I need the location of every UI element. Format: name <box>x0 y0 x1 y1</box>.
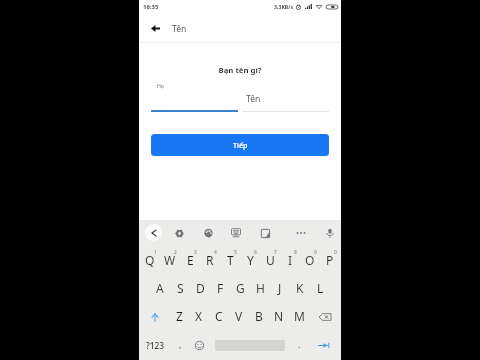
staticText: F <box>217 280 224 296</box>
staticText: B <box>255 308 263 324</box>
button[interactable]: G <box>230 275 250 303</box>
button[interactable]: T <box>220 247 240 275</box>
button[interactable]: K <box>290 275 310 303</box>
staticText: 6 <box>254 249 257 256</box>
staticText: C <box>215 308 223 324</box>
staticText: . <box>298 338 301 350</box>
staticText: T <box>227 252 234 268</box>
button[interactable]: Back <box>145 19 165 39</box>
button[interactable]: A <box>150 275 170 303</box>
button[interactable]: B <box>249 303 269 331</box>
button[interactable]: Themes <box>200 225 216 241</box>
staticText: Tên <box>246 93 261 105</box>
button[interactable]: H <box>250 275 270 303</box>
staticText: J <box>278 280 282 296</box>
staticText: 3 <box>194 249 197 256</box>
staticText: 16:35 <box>143 3 159 11</box>
button[interactable]: Space <box>209 331 291 359</box>
button[interactable]: E <box>180 247 200 275</box>
button[interactable]: N <box>269 303 289 331</box>
staticText: 7 <box>274 249 277 256</box>
staticText: 4 <box>214 249 217 256</box>
button[interactable]: M <box>289 303 309 331</box>
staticText: S <box>177 280 184 296</box>
button[interactable]: Settings <box>171 225 187 241</box>
button[interactable]: Clipboard <box>257 225 273 241</box>
staticText: Tên <box>172 23 187 35</box>
staticText: Tiếp <box>233 140 248 150</box>
button[interactable]: . <box>291 331 308 359</box>
button[interactable]: Backspace <box>309 303 340 331</box>
staticText: K <box>296 280 304 296</box>
button[interactable]: Voice input <box>322 225 338 241</box>
staticText: G <box>236 280 245 296</box>
button[interactable]: , <box>170 331 190 359</box>
button[interactable]: I <box>280 247 300 275</box>
staticText: I <box>288 252 293 268</box>
button[interactable]: F <box>210 275 230 303</box>
button[interactable]: C <box>209 303 229 331</box>
staticText: 1 <box>154 249 157 256</box>
staticText: 2 <box>174 249 177 256</box>
staticText: 8 <box>294 249 297 256</box>
staticText: R <box>206 252 214 268</box>
staticText: D <box>196 280 205 296</box>
button[interactable]: Shift <box>140 303 169 331</box>
staticText: 3,3KB/s <box>274 3 294 10</box>
staticText: U <box>266 252 275 268</box>
staticText: N <box>274 308 284 324</box>
button[interactable]: Tiếp <box>151 134 329 156</box>
button[interactable]: X <box>189 303 209 331</box>
staticText: Y <box>247 252 254 268</box>
staticText: X <box>195 308 203 324</box>
button[interactable]: Next <box>308 331 340 359</box>
staticText: W <box>164 252 176 268</box>
button[interactable]: S <box>170 275 190 303</box>
button[interactable]: L <box>310 275 330 303</box>
button[interactable]: Emoji <box>190 331 209 359</box>
button[interactable]: W <box>160 247 180 275</box>
button[interactable]: Expand toolbar <box>145 224 162 241</box>
button[interactable]: ?123 <box>140 331 170 359</box>
staticText: P <box>326 252 334 268</box>
button[interactable]: Tên <box>242 81 329 112</box>
button[interactable]: J <box>270 275 290 303</box>
button[interactable]: D <box>190 275 210 303</box>
button[interactable]: R <box>200 247 220 275</box>
staticText: , <box>179 338 182 350</box>
staticText: Họ <box>157 82 164 89</box>
button[interactable]: U <box>260 247 280 275</box>
staticText: Q <box>145 252 155 268</box>
button[interactable]: Y <box>240 247 260 275</box>
staticText: 5 <box>234 249 237 256</box>
staticText: Bạn tên gì? <box>139 65 341 76</box>
staticText: 0 <box>334 249 337 256</box>
button[interactable]: V <box>229 303 249 331</box>
button[interactable]: Z <box>169 303 189 331</box>
staticText: 9 <box>314 249 317 256</box>
staticText: ?123 <box>146 340 165 351</box>
staticText: Z <box>176 308 183 324</box>
staticText: V <box>235 308 243 324</box>
button[interactable]: Stickers <box>228 225 244 241</box>
button[interactable]: Q <box>140 247 160 275</box>
staticText: M <box>294 308 305 324</box>
staticText: A <box>156 280 164 296</box>
staticText: E <box>187 252 194 268</box>
button[interactable]: O <box>300 247 320 275</box>
button[interactable]: More options <box>293 225 309 241</box>
staticText: O <box>305 252 315 268</box>
button[interactable]: P <box>320 247 340 275</box>
button[interactable]: Họ <box>151 81 238 112</box>
staticText: H <box>256 280 265 296</box>
staticText: L <box>317 280 324 296</box>
